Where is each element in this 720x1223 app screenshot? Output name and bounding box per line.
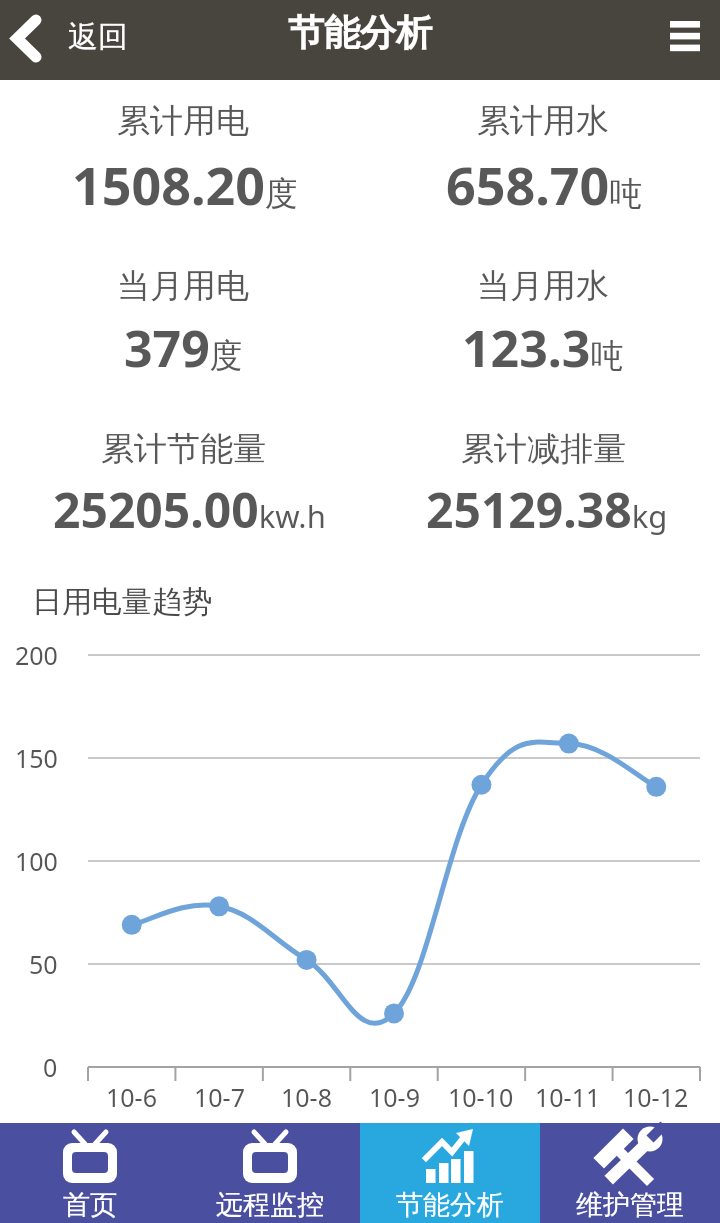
button[interactable]: 首页 (0, 1123, 180, 1223)
staticText: 日用电量趋势 (32, 583, 212, 621)
staticText: 返回 (68, 18, 128, 56)
staticText: 10-11 (535, 1080, 601, 1114)
staticText: 远程监控 (216, 1188, 324, 1222)
staticText: 100 (15, 844, 58, 878)
staticText: 当月用水 (477, 265, 609, 307)
staticText: 累计节能量 (101, 428, 266, 470)
staticText: 当月用电 (117, 265, 249, 307)
button[interactable]: 节能分析 (360, 1123, 540, 1223)
staticText: 25205.00kw.h (53, 477, 326, 542)
staticText: 节能分析 (288, 10, 432, 55)
button[interactable]: 返回 (0, 0, 160, 80)
staticText: 10-10 (448, 1080, 514, 1114)
staticText: 累计用电 (117, 100, 249, 142)
staticText: 10-6 (106, 1080, 157, 1114)
staticText: 0 (43, 1050, 58, 1084)
staticText: 25129.38kg (426, 477, 668, 542)
staticText: 10-9 (369, 1080, 420, 1114)
staticText: 10-7 (194, 1080, 245, 1114)
staticText: 10-8 (281, 1080, 332, 1114)
staticText: 123.3吨 (462, 314, 624, 382)
staticText: 150 (15, 741, 58, 775)
staticText: 379度 (124, 314, 243, 382)
staticText: 累计减排量 (461, 428, 626, 470)
staticText: 200 (15, 638, 58, 672)
button[interactable]: 维护管理 (540, 1123, 720, 1223)
staticText: 累计用水 (477, 100, 609, 142)
staticText: 50 (29, 947, 58, 981)
staticText: 1508.20度 (72, 149, 299, 220)
button[interactable]: 远程监控 (180, 1123, 360, 1223)
staticText: 658.70吨 (446, 149, 643, 220)
staticText: 10-12 (623, 1080, 689, 1114)
staticText: 节能分析 (396, 1188, 504, 1222)
staticText: 首页 (63, 1188, 117, 1222)
button[interactable] (654, 0, 720, 80)
staticText: 维护管理 (576, 1188, 684, 1222)
